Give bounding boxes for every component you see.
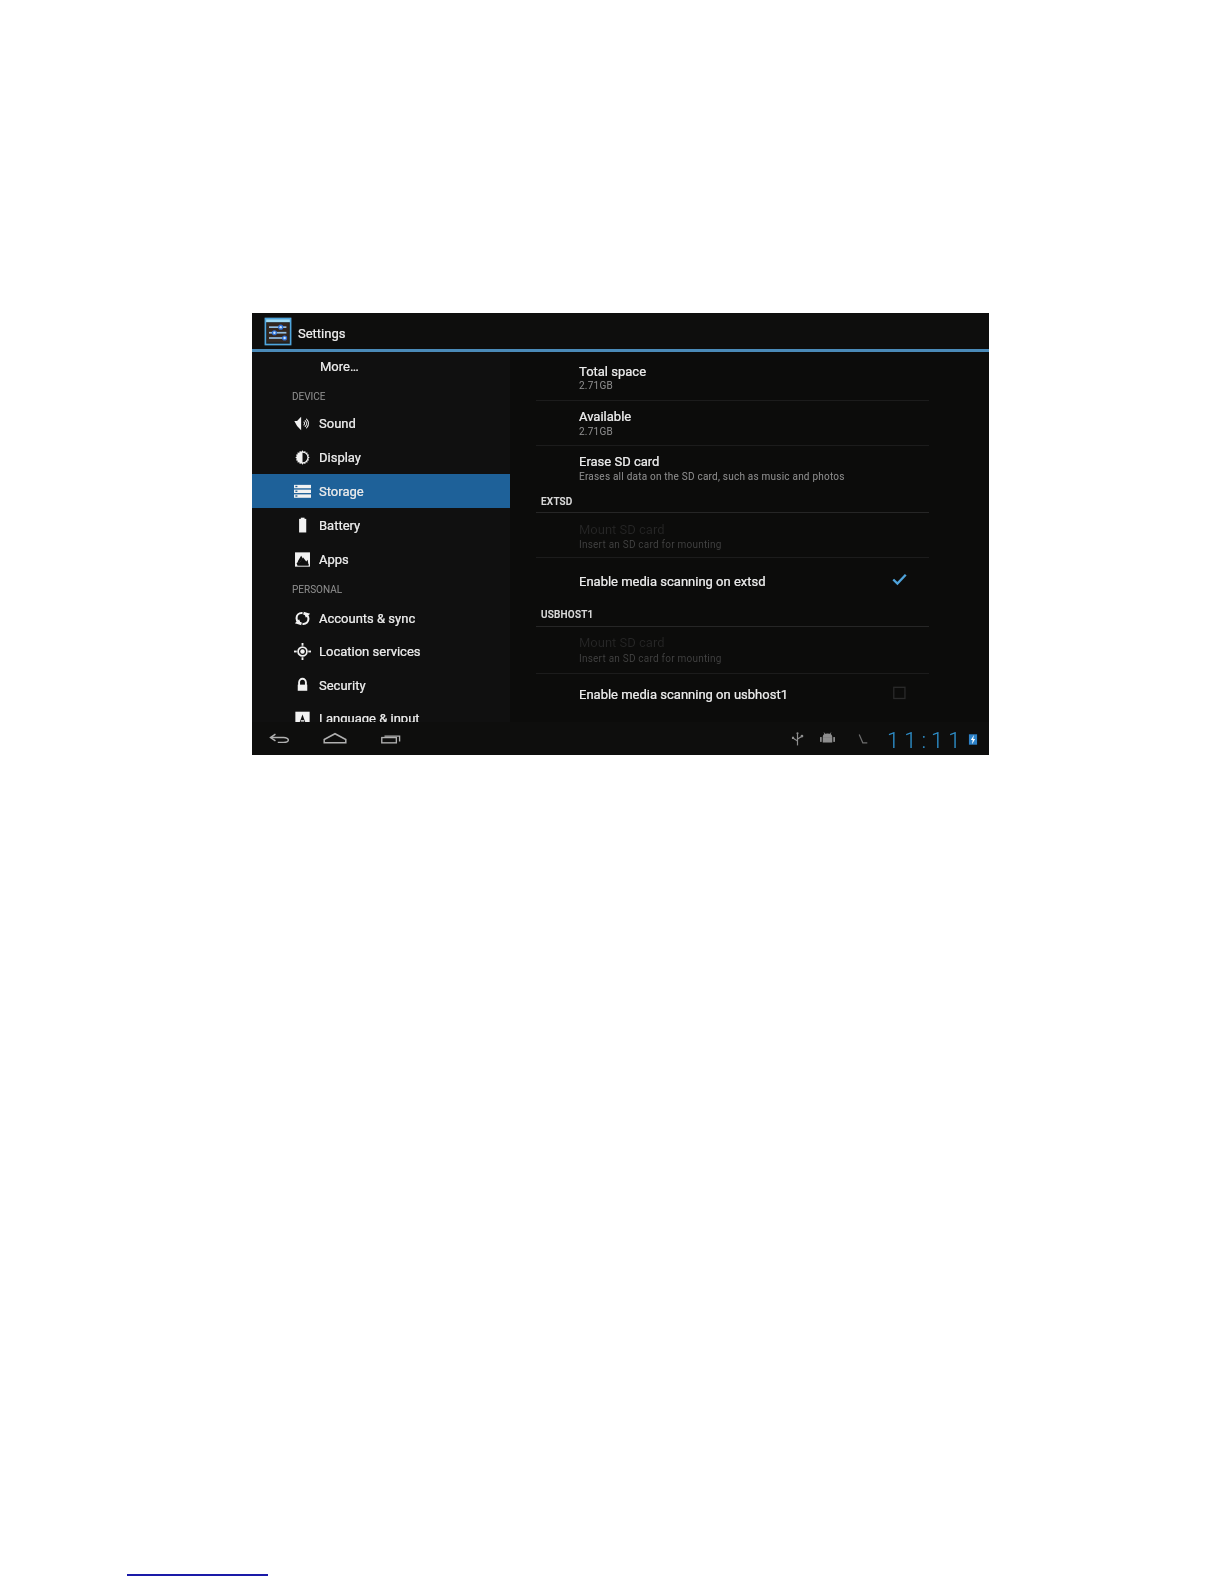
button[interactable]: Back <box>265 727 294 751</box>
staticText: Accounts & sync <box>319 611 416 626</box>
button[interactable]: Available <box>579 406 632 426</box>
button[interactable]: Erase SD card <box>579 451 660 471</box>
staticText: Erase SD card <box>579 454 660 469</box>
button[interactable]: Language & input <box>252 701 510 735</box>
staticText: Enable media scanning on extsd <box>579 574 766 589</box>
button[interactable]: Accounts & sync <box>252 601 510 635</box>
staticText: PERSONAL <box>292 584 343 596</box>
staticText: 2.71GB <box>579 380 613 392</box>
button[interactable]: More… <box>252 349 510 383</box>
button[interactable]: Recent apps <box>378 727 405 751</box>
button[interactable]: Home <box>320 727 350 751</box>
staticText: DEVICE <box>292 391 326 403</box>
staticText: EXTSD <box>541 496 573 508</box>
staticText: Battery <box>319 518 361 533</box>
staticText: Insert an SD card for mounting <box>579 539 722 551</box>
button[interactable]: Apps <box>252 542 510 576</box>
staticText: More… <box>320 359 359 374</box>
button[interactable]: Security <box>252 668 510 702</box>
button[interactable]: Battery <box>252 508 510 542</box>
staticText: Sound <box>319 416 356 431</box>
staticText: Erases all data on the SD card, such as … <box>579 471 845 483</box>
staticText: USBHOST1 <box>541 609 594 621</box>
button[interactable]: Enable media scanning on usbhost1 <box>536 682 929 706</box>
staticText: Available <box>579 409 632 424</box>
staticText: Storage <box>319 484 364 499</box>
staticText: Apps <box>319 552 349 567</box>
button[interactable]: Storage <box>252 474 510 508</box>
staticText: Location services <box>319 644 421 659</box>
staticText: Mount SD card <box>579 522 665 537</box>
staticText: Display <box>319 450 361 465</box>
button[interactable]: Display <box>252 440 510 474</box>
button[interactable]: Settings app <box>263 316 293 347</box>
staticText: Insert an SD card for mounting <box>579 653 722 665</box>
staticText: Language & input <box>319 711 420 726</box>
staticText: Security <box>319 678 366 693</box>
button[interactable]: Sound <box>252 406 510 440</box>
staticText: Total space <box>579 364 647 379</box>
button[interactable]: Total space <box>579 361 647 381</box>
staticText: Mount SD card <box>579 635 665 650</box>
staticText: Settings <box>298 326 346 341</box>
staticText: 2.71GB <box>579 426 613 438</box>
button[interactable]: Mount SD card <box>579 519 665 539</box>
staticText: 11:11 <box>887 728 966 754</box>
button[interactable]: Enable media scanning on extsd <box>536 569 929 593</box>
button[interactable]: Location services <box>252 634 510 668</box>
staticText: Enable media scanning on usbhost1 <box>579 687 788 702</box>
button[interactable]: Mount SD card <box>579 632 665 652</box>
